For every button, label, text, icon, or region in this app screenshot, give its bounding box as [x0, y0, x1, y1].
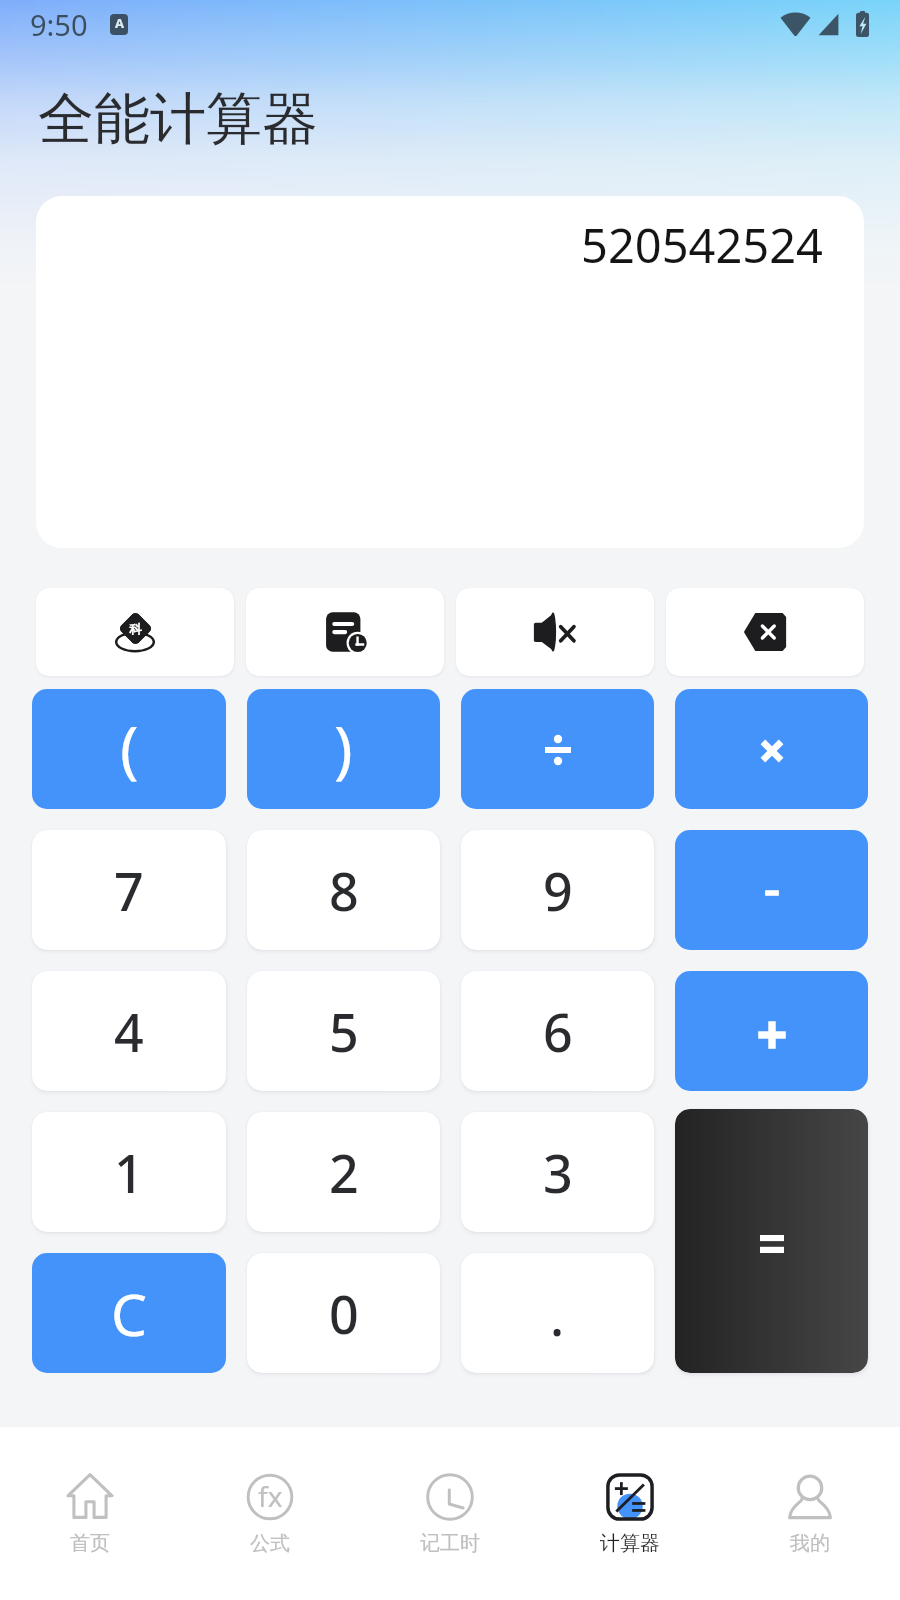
button[interactable]: 0 [247, 1253, 440, 1373]
button[interactable]: . [461, 1253, 654, 1373]
button[interactable]: 1 [32, 1112, 226, 1232]
staticText: 9 [543, 855, 573, 926]
button[interactable] [461, 689, 654, 809]
staticText: . [550, 1280, 565, 1351]
staticText: 7 [114, 855, 144, 926]
staticText: A [115, 14, 124, 32]
button[interactable]: 2 [247, 1112, 440, 1232]
staticText: 全能计算器 [38, 84, 318, 155]
staticText: 记工时 [420, 1531, 480, 1556]
staticText: 2 [329, 1137, 359, 1208]
button[interactable]: 计算器 [540, 1473, 720, 1556]
staticText: 4 [114, 996, 144, 1067]
button[interactable]: 4 [32, 971, 226, 1091]
staticText: 首页 [70, 1531, 110, 1556]
staticText: 5 [329, 996, 359, 1067]
button[interactable] [675, 689, 868, 809]
staticText: fx [258, 1477, 283, 1515]
staticText: 科 [129, 621, 142, 635]
button[interactable]: 9 [461, 830, 654, 950]
staticText: 9:50 [30, 5, 88, 44]
button[interactable]: C [32, 1253, 226, 1373]
button[interactable]: ) [247, 689, 440, 809]
staticText: 8 [329, 855, 359, 926]
staticText: C [111, 1275, 148, 1353]
button[interactable]: 7 [32, 830, 226, 950]
staticText: 6 [543, 996, 573, 1067]
staticText: 1 [114, 1137, 144, 1208]
staticText: 520542524 [581, 213, 823, 277]
staticText: 0 [329, 1278, 359, 1349]
button[interactable]: 首页 [0, 1473, 180, 1556]
button[interactable]: Mute [456, 588, 654, 676]
button[interactable]: 我的 [720, 1473, 900, 1556]
button[interactable]: History [246, 588, 444, 676]
staticText: 我的 [790, 1531, 830, 1556]
button[interactable]: 记工时 [360, 1473, 540, 1556]
button[interactable]: 8 [247, 830, 440, 950]
button[interactable]: ( [32, 689, 226, 809]
staticText: 3 [543, 1137, 573, 1208]
staticText: ) [334, 705, 353, 789]
button[interactable]: Backspace [666, 588, 864, 676]
button[interactable]: fx [180, 1473, 360, 1556]
button[interactable]: 5 [247, 971, 440, 1091]
staticText: 公式 [250, 1531, 290, 1556]
button[interactable]: Scientific mode [36, 588, 234, 676]
button[interactable] [675, 971, 868, 1091]
button[interactable] [675, 830, 868, 950]
staticText: 计算器 [600, 1531, 660, 1556]
button[interactable]: 6 [461, 971, 654, 1091]
staticText: ( [120, 705, 139, 789]
button[interactable] [675, 1109, 868, 1373]
button[interactable]: 3 [461, 1112, 654, 1232]
